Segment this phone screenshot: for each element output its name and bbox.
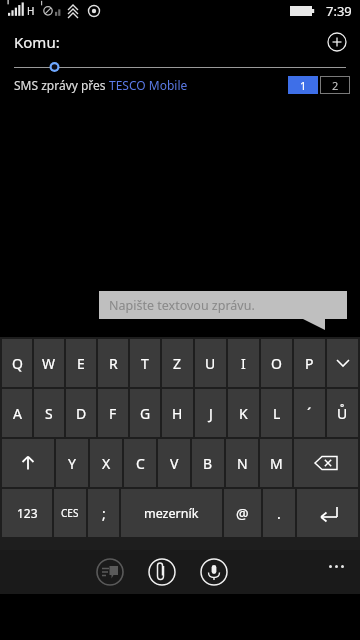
- button[interactable]: Add recipient: [324, 29, 350, 55]
- staticText: M: [270, 454, 283, 473]
- button[interactable]: Napište textovou zprávu.: [99, 291, 347, 329]
- button[interactable]: S: [34, 389, 64, 437]
- staticText: D: [76, 404, 87, 423]
- button[interactable]: Attach: [147, 557, 177, 587]
- button[interactable]: F: [98, 389, 128, 437]
- staticText: Komu:: [14, 32, 60, 52]
- staticText: mezerník: [144, 505, 199, 522]
- button[interactable]: E: [66, 339, 96, 387]
- button[interactable]: O: [261, 339, 292, 387]
- staticText: P: [305, 354, 314, 373]
- button[interactable]: D: [66, 389, 96, 437]
- button[interactable]: V: [158, 439, 190, 487]
- staticText: C: [136, 454, 145, 473]
- button[interactable]: More options: [318, 557, 354, 587]
- button[interactable]: CES: [54, 489, 86, 537]
- staticText: 1: [300, 78, 307, 93]
- button[interactable]: M: [260, 439, 292, 487]
- button[interactable]: 1: [288, 76, 318, 94]
- button[interactable]: 2: [320, 76, 350, 94]
- button[interactable]: Y: [56, 439, 88, 487]
- button[interactable]: 123: [2, 489, 52, 537]
- staticText: SMS zprávy přes: [14, 77, 109, 93]
- staticText: B: [203, 454, 213, 473]
- staticText: O: [271, 354, 282, 373]
- button[interactable]: W: [34, 339, 64, 387]
- button[interactable]: K: [228, 389, 259, 437]
- staticText: L: [273, 404, 281, 423]
- staticText: H: [172, 404, 183, 423]
- staticText: 123: [17, 505, 38, 521]
- button[interactable]: P: [294, 339, 325, 387]
- button[interactable]: C: [124, 439, 156, 487]
- staticText: X: [102, 454, 111, 473]
- button[interactable]: Voice input: [199, 557, 229, 587]
- button[interactable]: I: [228, 339, 259, 387]
- staticText: K: [239, 404, 248, 423]
- staticText: G: [140, 404, 151, 423]
- button[interactable]: Z: [162, 339, 193, 387]
- button[interactable]: .: [263, 489, 295, 537]
- staticText: F: [109, 404, 117, 423]
- staticText: W: [42, 354, 56, 373]
- staticText: 7:39: [326, 2, 352, 20]
- button[interactable]: U: [195, 339, 226, 387]
- button[interactable]: Shift: [2, 439, 54, 487]
- button[interactable]: J: [195, 389, 226, 437]
- button[interactable]: A: [2, 389, 32, 437]
- button[interactable]: Q: [2, 339, 32, 387]
- staticText: Napište textovou zprávu.: [109, 297, 255, 314]
- staticText: @: [236, 504, 249, 523]
- staticText: J: [209, 404, 213, 423]
- staticText: N: [237, 454, 248, 473]
- staticText: I: [241, 354, 246, 373]
- button[interactable]: Backspace: [294, 439, 358, 487]
- staticText: U: [205, 354, 216, 373]
- staticText: ;: [102, 504, 106, 523]
- staticText: CES: [61, 506, 79, 520]
- staticText: Y: [68, 454, 76, 473]
- staticText: .: [277, 504, 281, 523]
- button[interactable]: L: [261, 389, 292, 437]
- button[interactable]: G: [130, 389, 160, 437]
- button[interactable]: B: [192, 439, 224, 487]
- button[interactable]: T: [130, 339, 160, 387]
- button[interactable]: R: [98, 339, 128, 387]
- button[interactable]: ;: [88, 489, 119, 537]
- staticText: ´: [307, 403, 312, 423]
- staticText: R: [109, 354, 118, 373]
- staticText: Q: [12, 354, 23, 373]
- button[interactable]: Send with SIM 1: [95, 557, 125, 587]
- staticText: A: [13, 404, 22, 423]
- button[interactable]: mezerník: [121, 489, 222, 537]
- button[interactable]: N: [226, 439, 258, 487]
- button[interactable]: ´: [294, 389, 325, 437]
- staticText: H: [27, 4, 35, 18]
- staticText: Ů: [337, 404, 348, 423]
- staticText: S: [45, 404, 53, 423]
- staticText: 2: [332, 78, 339, 93]
- button[interactable]: X: [90, 439, 122, 487]
- staticText: Z: [173, 354, 182, 373]
- button[interactable]: Enter: [297, 489, 358, 537]
- button[interactable]: @: [224, 489, 261, 537]
- staticText: TESCO Mobile: [109, 77, 188, 93]
- button[interactable]: Ů: [327, 389, 358, 437]
- button[interactable]: More keys: [327, 339, 358, 387]
- staticText: V: [170, 454, 179, 473]
- staticText: T: [141, 354, 149, 373]
- button[interactable]: H: [162, 389, 193, 437]
- staticText: E: [77, 354, 85, 373]
